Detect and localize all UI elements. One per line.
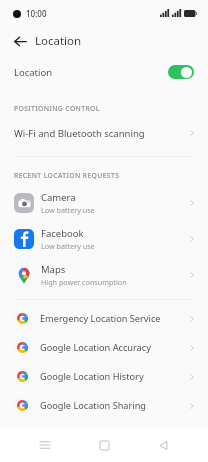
staticText: Camera xyxy=(41,191,76,204)
button[interactable]: Back xyxy=(9,30,31,52)
button[interactable]: Facebook xyxy=(0,221,208,257)
staticText: POSITIONING CONTROL xyxy=(14,104,100,113)
button[interactable]: Wi-Fi and Bluetooth scanning xyxy=(0,118,208,148)
staticText: Google Location Sharing xyxy=(40,399,147,412)
staticText: Wi-Fi and Bluetooth scanning xyxy=(14,127,145,140)
other: Open xyxy=(187,198,197,208)
other: Open xyxy=(187,343,197,353)
staticText: Location xyxy=(35,33,82,49)
other: Open xyxy=(187,270,197,280)
staticText: Google Location History xyxy=(40,370,144,383)
other: Open xyxy=(187,401,197,411)
button[interactable]: Google Location Accuracy xyxy=(0,333,208,362)
button[interactable]: Emergency Location Service xyxy=(0,304,208,333)
staticText: 10:00 xyxy=(26,8,47,19)
staticText: RECENT LOCATION REQUESTS xyxy=(14,171,120,180)
button[interactable]: Recent apps xyxy=(31,431,59,459)
staticText: Maps xyxy=(41,263,66,276)
staticText: Emergency Location Service xyxy=(40,312,161,325)
staticText: Location xyxy=(14,66,53,79)
staticText: Low battery use xyxy=(41,205,95,215)
button[interactable]: Google Location History xyxy=(0,362,208,391)
button[interactable]: Google Location Sharing xyxy=(0,391,208,420)
staticText: Facebook xyxy=(41,227,84,240)
other: Open xyxy=(187,372,197,382)
button[interactable]: Location xyxy=(0,56,208,88)
other: Open xyxy=(187,128,197,138)
button[interactable]: Camera xyxy=(0,185,208,221)
staticText: High power consumption xyxy=(41,277,127,287)
staticText: Google Location Accuracy xyxy=(40,341,151,354)
button[interactable]: Back xyxy=(149,431,177,459)
button[interactable]: Home xyxy=(90,431,118,459)
staticText: Low battery use xyxy=(41,241,95,251)
button[interactable]: Maps xyxy=(0,257,208,293)
other: Open xyxy=(187,234,197,244)
other: Open xyxy=(187,314,197,324)
